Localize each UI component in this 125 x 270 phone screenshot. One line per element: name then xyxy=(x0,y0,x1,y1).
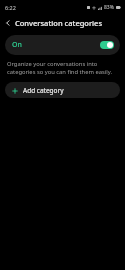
staticText: 83% xyxy=(104,4,114,11)
button[interactable]: Toggle conversation categories xyxy=(100,41,114,49)
staticText: 6:22 xyxy=(5,4,16,11)
button[interactable]: On xyxy=(5,35,120,55)
button[interactable]: Add category xyxy=(5,82,120,98)
staticText: Organize your conversations into categor… xyxy=(7,60,117,76)
button[interactable]: Back xyxy=(2,17,14,29)
staticText: Conversation categories xyxy=(15,18,103,28)
staticText: Add category xyxy=(23,86,64,95)
staticText: On xyxy=(12,40,22,50)
